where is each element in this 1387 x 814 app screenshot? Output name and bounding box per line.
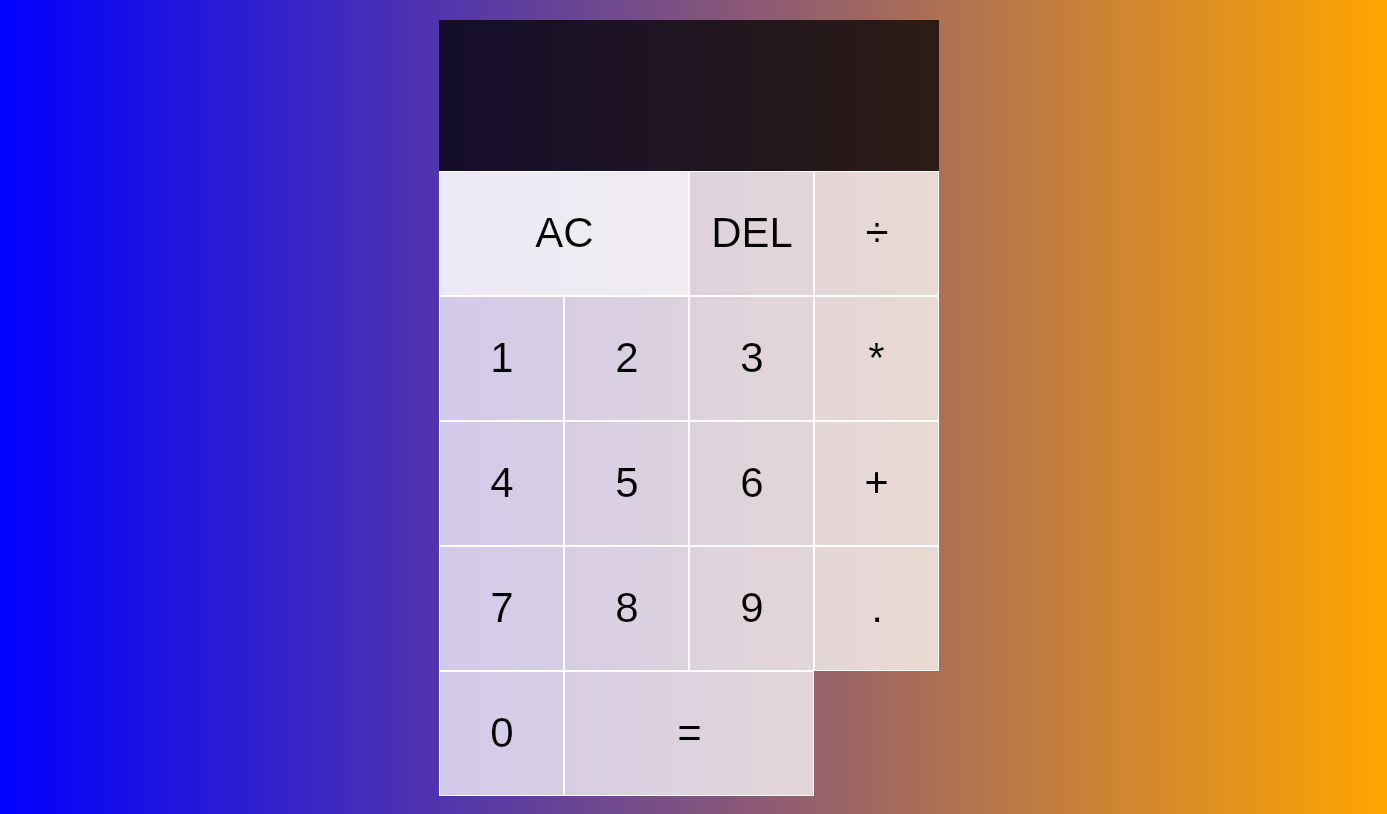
button[interactable]: 7 (439, 546, 564, 671)
staticText: 2 (615, 334, 639, 381)
button[interactable]: ÷ (814, 171, 939, 296)
button[interactable]: 9 (689, 546, 814, 671)
button[interactable]: DEL (689, 171, 814, 296)
button[interactable]: 0 (439, 671, 564, 796)
staticText: * (868, 334, 885, 381)
button[interactable]: 2 (564, 296, 689, 421)
staticText: 5 (615, 459, 639, 506)
staticText: AC (535, 209, 594, 256)
staticText: 4 (490, 459, 514, 506)
button[interactable]: 4 (439, 421, 564, 546)
staticText: + (864, 459, 889, 506)
staticText: . (871, 584, 883, 631)
staticText: 9 (740, 584, 764, 631)
staticText: 1 (490, 334, 514, 381)
staticText: = (677, 709, 702, 756)
button[interactable]: 3 (689, 296, 814, 421)
staticText: 0 (490, 709, 514, 756)
button[interactable]: * (814, 296, 939, 421)
button[interactable]: 1 (439, 296, 564, 421)
staticText: 6 (740, 459, 764, 506)
button[interactable]: 5 (564, 421, 689, 546)
staticText: DEL (711, 209, 793, 256)
staticText: 7 (490, 584, 514, 631)
button[interactable]: AC (439, 171, 689, 296)
button[interactable]: . (814, 546, 939, 671)
staticText: 3 (740, 334, 764, 381)
button[interactable]: + (814, 421, 939, 546)
button[interactable]: 8 (564, 546, 689, 671)
staticText: ÷ (865, 209, 889, 256)
staticText: 8 (615, 584, 639, 631)
button[interactable]: 6 (689, 421, 814, 546)
button[interactable]: = (564, 671, 814, 796)
